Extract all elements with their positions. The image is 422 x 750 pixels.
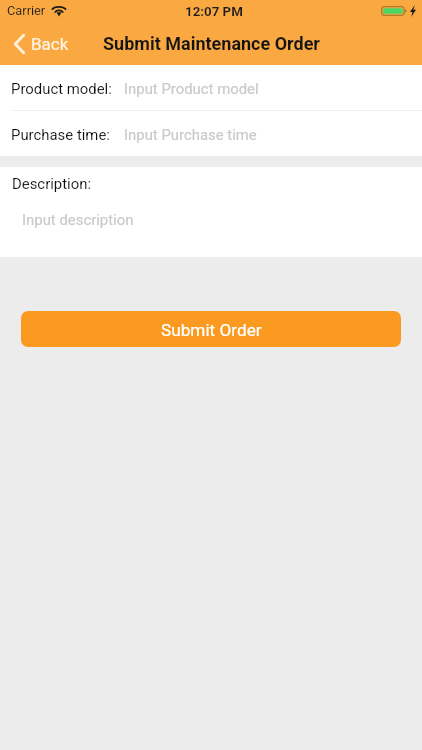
staticText: Carrier [7,3,46,18]
button[interactable]: Description: [0,167,422,257]
staticText: Description: [12,175,91,192]
staticText: 12:07 PM [185,4,243,20]
staticText: Input Purchase time [124,126,257,143]
button[interactable]: Back [0,33,77,55]
staticText: Purchase time: [11,126,110,143]
button[interactable]: Purchase time: [0,111,422,156]
button[interactable]: Product model: [0,65,422,110]
button[interactable]: Submit Order [21,311,401,347]
staticText: Product model: [11,80,112,97]
staticText: Input Product model [124,80,259,97]
staticText: Submit Maintenance Order [103,33,320,54]
other: Back [12,33,25,55]
staticText: Input description [22,211,134,228]
staticText: Back [31,34,69,54]
staticText: Submit Order [161,320,262,340]
